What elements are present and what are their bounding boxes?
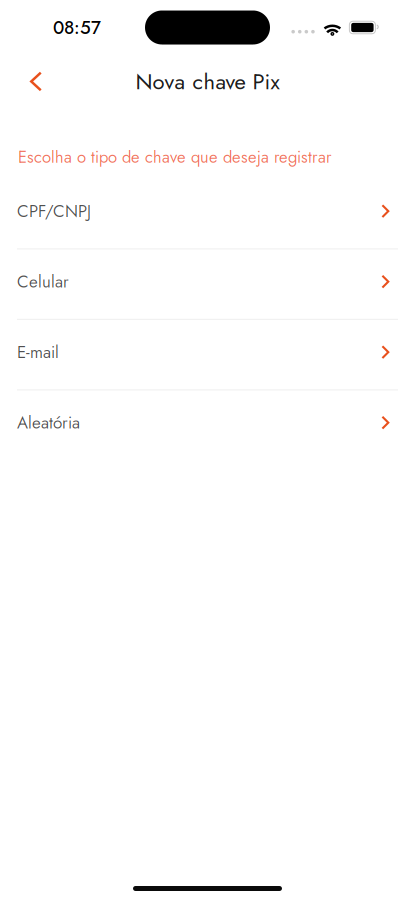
- button[interactable]: Back: [15, 60, 57, 102]
- staticText: CPF/CNPJ: [17, 199, 91, 223]
- button[interactable]: E-mail: [0, 320, 415, 389]
- staticText: Nova chave Pix: [135, 66, 279, 97]
- staticText: Celular: [17, 269, 69, 294]
- button[interactable]: Aleatória: [0, 390, 415, 460]
- staticText: E-mail: [17, 340, 59, 364]
- button[interactable]: Celular: [0, 249, 415, 319]
- staticText: Escolha o tipo de chave que deseja regis…: [18, 145, 332, 169]
- staticText: Aleatória: [17, 410, 80, 435]
- staticText: 08:57: [53, 14, 101, 41]
- button[interactable]: CPF/CNPJ: [0, 179, 415, 248]
